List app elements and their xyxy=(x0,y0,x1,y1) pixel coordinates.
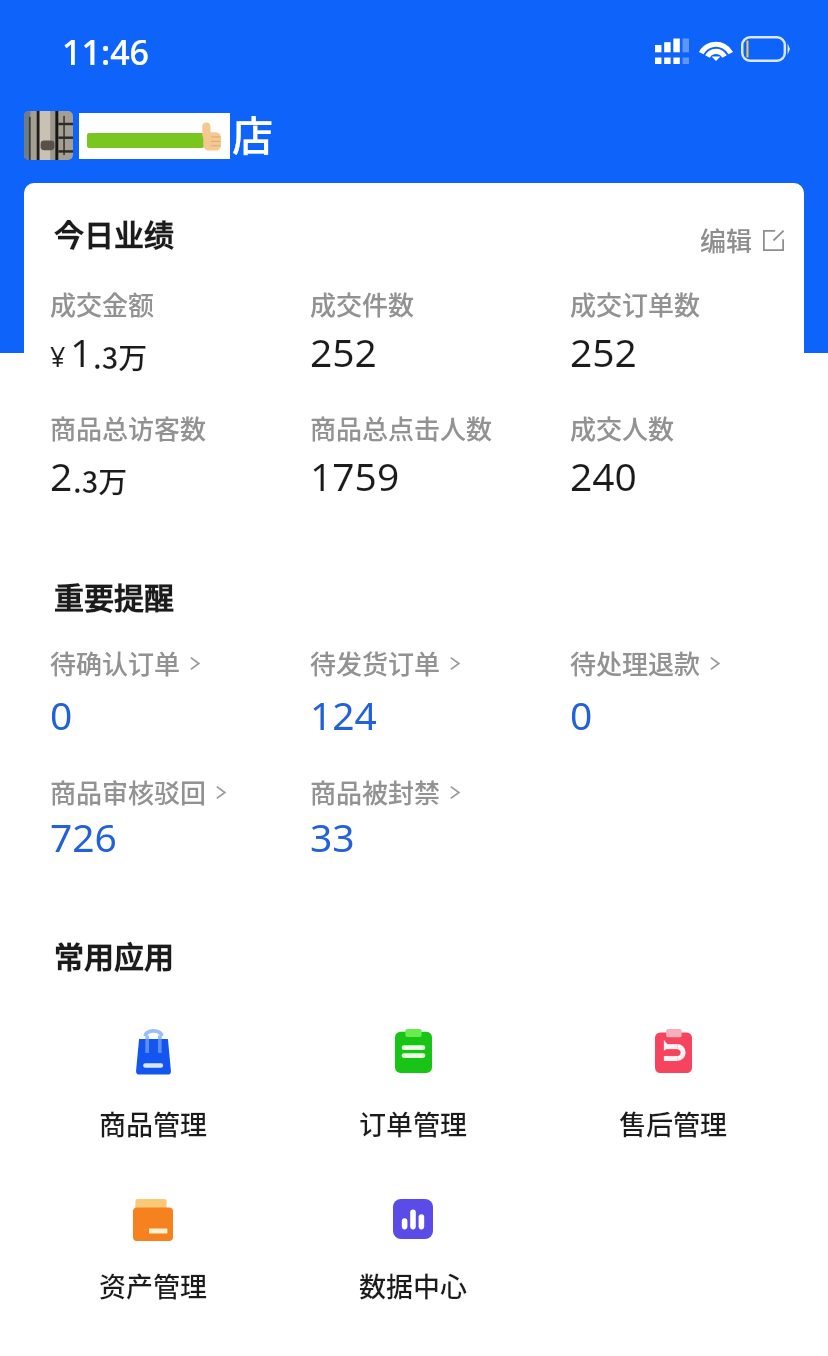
staticText: 252 xyxy=(570,325,637,378)
button[interactable] xyxy=(46,277,296,361)
staticText: 资产管理 xyxy=(99,1266,207,1305)
button[interactable] xyxy=(566,636,816,724)
other: Wi-Fi xyxy=(697,35,735,61)
staticText: 订单管理 xyxy=(359,1104,467,1143)
staticText: 商品被封禁 xyxy=(310,773,441,811)
staticText: ¥ xyxy=(50,338,66,375)
button[interactable]: 编辑 xyxy=(692,216,792,264)
button[interactable] xyxy=(566,401,816,485)
staticText: 33 xyxy=(310,810,355,863)
button[interactable] xyxy=(583,1015,763,1144)
staticText: 0 xyxy=(50,688,73,741)
staticText: 待确认订单 xyxy=(50,644,181,682)
staticText: 成交人数 xyxy=(570,409,675,447)
button[interactable] xyxy=(63,1185,243,1306)
button[interactable] xyxy=(46,765,296,846)
button[interactable] xyxy=(306,636,556,724)
button[interactable] xyxy=(306,765,556,846)
staticText: .3万 xyxy=(73,459,128,501)
button[interactable] xyxy=(46,636,296,724)
staticText: 商品总访客数 xyxy=(50,409,207,447)
other: Battery xyxy=(741,36,790,62)
staticText: 1759 xyxy=(310,449,400,502)
button[interactable] xyxy=(63,1015,243,1144)
staticText: 252 xyxy=(310,325,377,378)
staticText: 编辑 xyxy=(700,221,753,259)
staticText: 2 xyxy=(50,449,73,502)
staticText: 成交订单数 xyxy=(570,285,701,323)
staticText: 11:46 xyxy=(62,29,150,75)
staticText: 常用应用 xyxy=(54,933,174,976)
button[interactable] xyxy=(46,401,296,485)
staticText: 商品审核驳回 xyxy=(50,773,207,811)
staticText: 成交件数 xyxy=(310,285,415,323)
staticText: 售后管理 xyxy=(619,1104,727,1143)
button[interactable] xyxy=(306,277,556,361)
staticText: 待发货订单 xyxy=(310,644,441,682)
staticText: 重要提醒 xyxy=(54,574,174,617)
staticText: 商品总点击人数 xyxy=(310,409,493,447)
staticText: 124 xyxy=(310,688,377,741)
staticText: 今日业绩 xyxy=(54,211,174,254)
button[interactable] xyxy=(323,1015,503,1144)
staticText: 726 xyxy=(50,810,117,863)
staticText: 数据中心 xyxy=(359,1266,467,1305)
staticText: 商品管理 xyxy=(99,1104,207,1143)
staticText: 待处理退款 xyxy=(570,644,701,682)
staticText: 成交金额 xyxy=(50,285,155,323)
staticText: 1 xyxy=(70,325,93,378)
staticText: 240 xyxy=(570,449,637,502)
staticText: 店 xyxy=(232,103,273,162)
other: Edit xyxy=(763,230,784,251)
staticText: 0 xyxy=(570,688,593,741)
button[interactable] xyxy=(566,277,816,361)
other: Signal xyxy=(655,38,689,64)
staticText: .3万 xyxy=(93,335,148,377)
button[interactable] xyxy=(306,401,556,485)
button[interactable] xyxy=(323,1185,503,1306)
